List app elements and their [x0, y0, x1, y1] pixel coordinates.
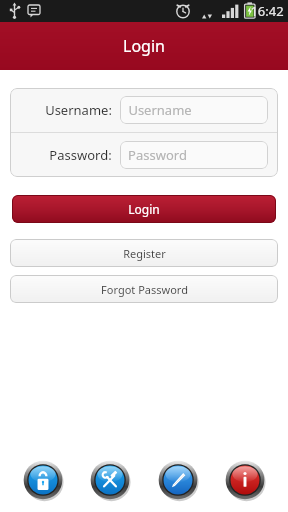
button[interactable]: Register	[10, 239, 278, 267]
staticText: Password:	[49, 146, 112, 164]
button[interactable]: Security	[22, 459, 64, 501]
button[interactable]: Username:	[10, 88, 278, 132]
button[interactable]: Login	[12, 195, 276, 223]
staticText: Forgot Password	[101, 282, 188, 297]
staticText: Login	[128, 201, 160, 217]
staticText: Login	[123, 35, 165, 57]
staticText: 16:42	[250, 2, 284, 20]
button[interactable]: Password:	[10, 133, 278, 177]
button[interactable]: Tools	[89, 459, 131, 501]
button[interactable]: Forgot Password	[10, 275, 278, 303]
button[interactable]: Info	[224, 459, 266, 501]
staticText: Username	[128, 101, 192, 119]
staticText: Username:	[45, 101, 112, 119]
staticText: Password	[128, 146, 187, 164]
staticText: Register	[123, 246, 166, 261]
button[interactable]: Edit	[157, 459, 199, 501]
